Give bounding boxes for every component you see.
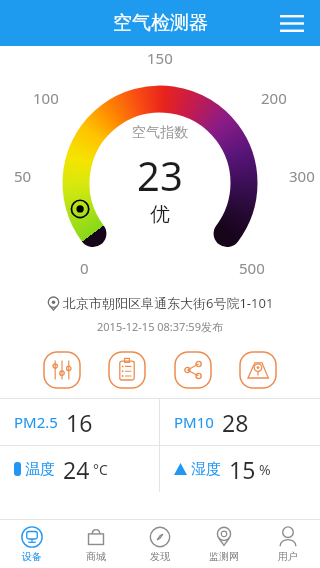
staticText: 发现 <box>150 550 170 563</box>
button[interactable]: 温度 <box>0 446 159 492</box>
staticText: 50 <box>14 166 32 186</box>
staticText: 空气检测器 <box>113 11 208 35</box>
button[interactable]: 发现 <box>128 520 192 568</box>
staticText: 100 <box>33 88 59 108</box>
staticText: °C <box>93 460 108 479</box>
staticText: 23 <box>137 148 183 202</box>
staticText: % <box>259 460 271 479</box>
button[interactable]: Settings <box>42 350 82 390</box>
staticText: 2015-12-15 08:37:59发布 <box>97 319 223 334</box>
staticText: 优 <box>150 202 170 227</box>
staticText: 24 <box>63 454 90 485</box>
staticText: 温度 <box>25 460 55 479</box>
staticText: 用户 <box>278 550 298 563</box>
staticText: 300 <box>289 166 315 186</box>
staticText: 设备 <box>22 550 42 563</box>
staticText: 500 <box>239 258 265 278</box>
button[interactable]: Map <box>238 350 278 390</box>
staticText: 北京市朝阳区阜通东大街6号院1-101 <box>63 294 274 312</box>
staticText: 商城 <box>86 550 106 563</box>
staticText: 0 <box>80 258 89 278</box>
button[interactable]: PM2.5 <box>0 399 159 445</box>
staticText: 空气指数 <box>132 124 188 142</box>
staticText: 16 <box>66 407 93 438</box>
staticText: 15 <box>229 454 256 485</box>
staticText: PM10 <box>174 412 214 432</box>
button[interactable]: Share <box>173 350 213 390</box>
button[interactable]: 商城 <box>64 520 128 568</box>
button[interactable]: 设备 <box>0 520 64 568</box>
staticText: 150 <box>147 48 173 68</box>
button[interactable]: 用户 <box>256 520 320 568</box>
button[interactable]: 监测网 <box>192 520 256 568</box>
button[interactable]: Menu <box>272 3 312 43</box>
button[interactable]: PM10 <box>160 399 320 445</box>
button[interactable]: 湿度 <box>160 446 320 492</box>
staticText: 28 <box>222 407 249 438</box>
button[interactable]: Report <box>107 350 147 390</box>
staticText: 湿度 <box>191 460 221 479</box>
staticText: 200 <box>261 88 287 108</box>
staticText: PM2.5 <box>14 412 58 432</box>
staticText: 监测网 <box>209 550 239 563</box>
